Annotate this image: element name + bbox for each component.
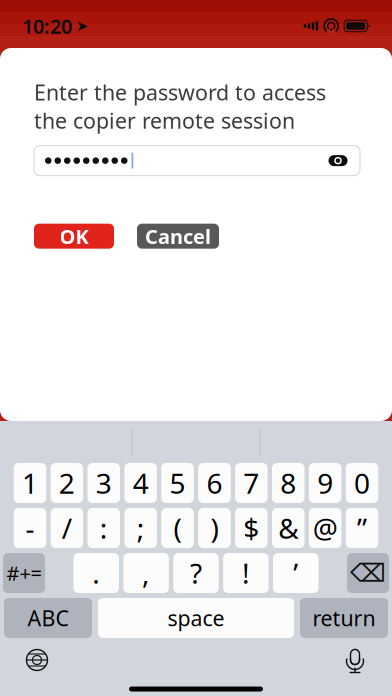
staticText: 4 bbox=[133, 464, 149, 502]
button[interactable]: : bbox=[87, 508, 120, 548]
button[interactable]: ( bbox=[161, 508, 194, 548]
button[interactable]: 9 bbox=[309, 463, 341, 503]
button[interactable]: ABC bbox=[4, 598, 92, 638]
button[interactable]: Dictation bbox=[340, 643, 370, 677]
staticText: 10:20 bbox=[22, 13, 72, 39]
staticText: / bbox=[62, 509, 72, 547]
button[interactable]: space bbox=[98, 598, 294, 638]
button[interactable]: 0 bbox=[346, 463, 378, 503]
staticText: ➤ bbox=[76, 18, 88, 34]
staticText: #+= bbox=[6, 560, 41, 586]
button[interactable]: ) bbox=[198, 508, 231, 548]
staticText: OK bbox=[59, 223, 88, 249]
staticText: @ bbox=[313, 509, 338, 547]
button[interactable]: 1 bbox=[14, 463, 46, 503]
button[interactable]: Next keyboard bbox=[22, 645, 52, 675]
button[interactable]: / bbox=[51, 508, 83, 548]
staticText: ? bbox=[190, 554, 202, 592]
button[interactable]: Cancel bbox=[137, 224, 219, 249]
staticText: ! bbox=[242, 554, 250, 592]
staticText: ⌫ bbox=[350, 559, 386, 587]
staticText: , bbox=[142, 554, 150, 592]
button[interactable]: return bbox=[300, 598, 388, 638]
button[interactable]: ? bbox=[173, 553, 219, 593]
staticText: ” bbox=[357, 509, 367, 547]
button[interactable]: . bbox=[73, 553, 119, 593]
staticText: 7 bbox=[243, 464, 259, 502]
button[interactable]: - bbox=[14, 508, 46, 548]
staticText: 9 bbox=[317, 464, 333, 502]
staticText: ABC bbox=[27, 604, 68, 632]
staticText: : bbox=[100, 509, 108, 547]
button[interactable]: OK bbox=[34, 224, 114, 249]
button[interactable]: 2 bbox=[51, 463, 83, 503]
button[interactable]: & bbox=[272, 508, 304, 548]
staticText: 8 bbox=[280, 464, 296, 502]
button[interactable]: 4 bbox=[124, 463, 157, 503]
button[interactable]: #+= bbox=[3, 553, 45, 593]
staticText: ( bbox=[173, 509, 181, 547]
button[interactable]: 7 bbox=[235, 463, 268, 503]
staticText: ; bbox=[137, 509, 145, 547]
button[interactable]: $ bbox=[235, 508, 268, 548]
staticText: . bbox=[92, 554, 100, 592]
button[interactable]: 8 bbox=[272, 463, 304, 503]
staticText: - bbox=[25, 509, 34, 547]
staticText: & bbox=[278, 509, 298, 547]
button[interactable]: ” bbox=[346, 508, 378, 548]
staticText: 5 bbox=[169, 464, 185, 502]
staticText: 6 bbox=[206, 464, 222, 502]
staticText: 0 bbox=[354, 464, 370, 502]
button[interactable]: 6 bbox=[198, 463, 231, 503]
button[interactable]: ! bbox=[223, 553, 269, 593]
staticText: 1 bbox=[22, 464, 38, 502]
button[interactable]: ’ bbox=[273, 553, 318, 593]
button[interactable]: 5 bbox=[161, 463, 194, 503]
button[interactable]: ; bbox=[124, 508, 157, 548]
staticText: Cancel bbox=[145, 223, 211, 249]
button[interactable]: Delete bbox=[347, 553, 389, 593]
staticText: return bbox=[312, 604, 375, 632]
staticText: ’ bbox=[293, 554, 298, 592]
button[interactable]: 3 bbox=[87, 463, 120, 503]
staticText: 3 bbox=[96, 464, 112, 502]
button[interactable]: , bbox=[123, 553, 169, 593]
staticText: ) bbox=[210, 509, 218, 547]
staticText: $ bbox=[243, 509, 259, 547]
staticText: space bbox=[167, 604, 224, 632]
button[interactable]: @ bbox=[309, 508, 341, 548]
staticText: 2 bbox=[59, 464, 75, 502]
staticText: Enter the password to access the copier … bbox=[34, 78, 326, 135]
